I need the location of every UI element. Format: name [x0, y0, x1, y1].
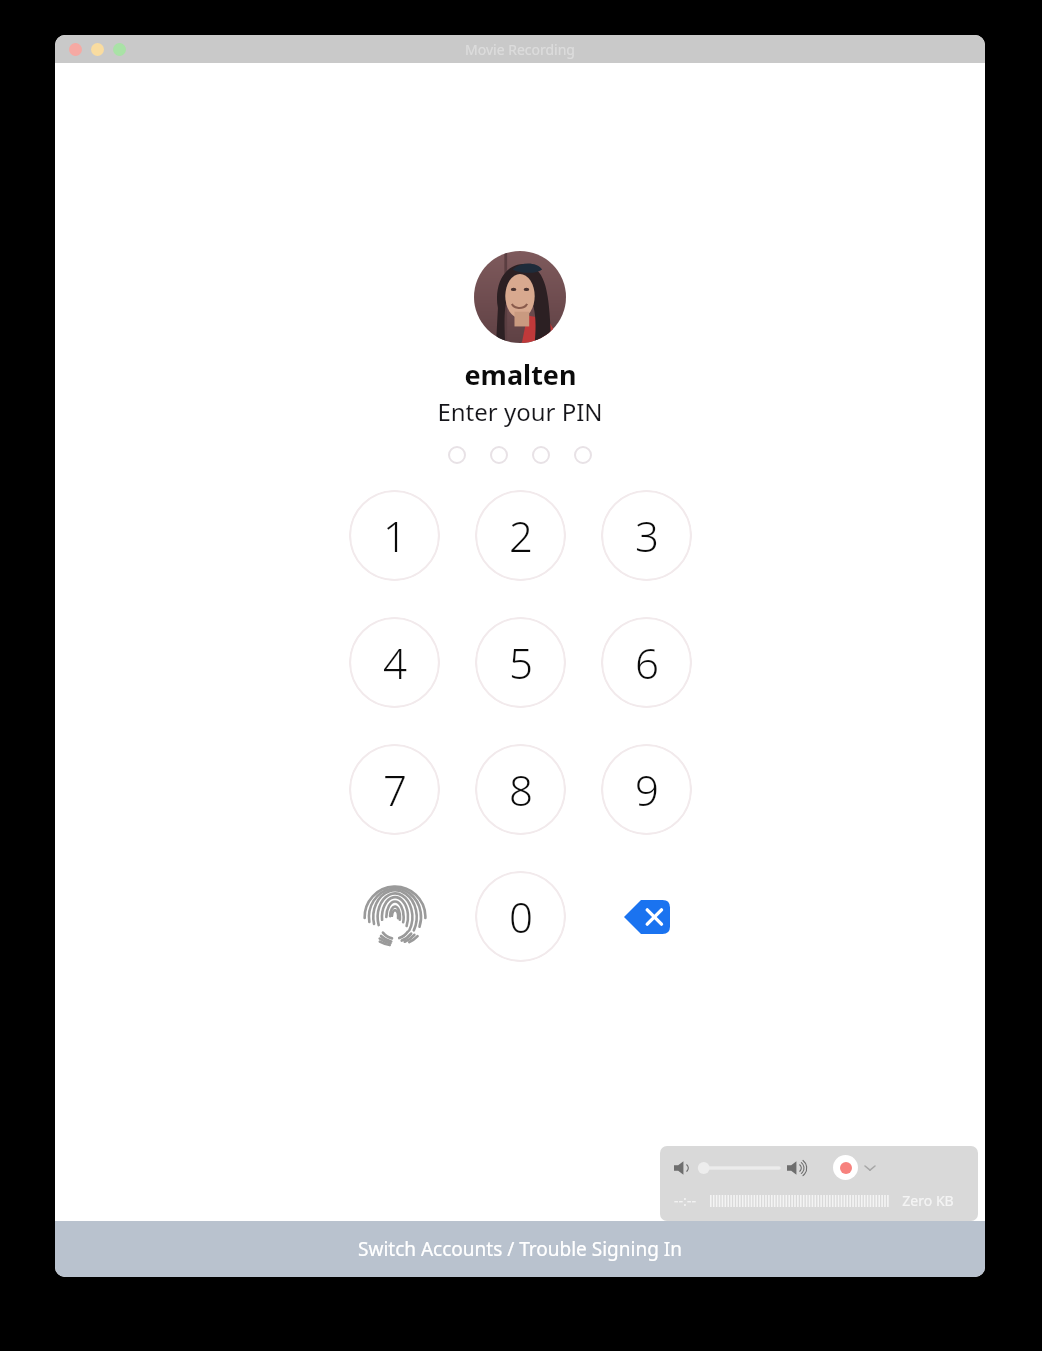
button[interactable]: Zoom — [113, 43, 126, 56]
button[interactable]: 7 — [349, 744, 440, 835]
button[interactable]: 2 — [475, 490, 566, 581]
staticText: 5 — [509, 634, 533, 691]
staticText: 7 — [383, 761, 407, 818]
staticText: 9 — [635, 761, 659, 818]
button[interactable]: User avatar — [474, 251, 566, 343]
button[interactable]: Delete — [601, 871, 692, 962]
button[interactable]: Record — [833, 1155, 858, 1180]
staticText: 6 — [635, 634, 659, 691]
button[interactable]: 9 — [601, 744, 692, 835]
button[interactable]: 0 — [475, 871, 566, 962]
button[interactable]: Close — [69, 43, 82, 56]
staticText: --:-- — [674, 1191, 696, 1210]
staticText: Switch Accounts / Trouble Signing In — [358, 1236, 682, 1262]
button[interactable]: 6 — [601, 617, 692, 708]
staticText: Zero KB — [902, 1191, 954, 1210]
button[interactable]: Recording options — [863, 1161, 877, 1175]
staticText: 0 — [509, 888, 533, 945]
staticText: Movie Recording — [465, 40, 575, 59]
button[interactable]: Switch Accounts / Trouble Signing In — [55, 1221, 985, 1277]
button[interactable]: Minimize — [91, 43, 104, 56]
staticText: 4 — [383, 634, 407, 691]
button[interactable]: Volume — [697, 1160, 781, 1176]
staticText: Enter your PIN — [437, 395, 603, 428]
staticText: 2 — [509, 507, 533, 564]
button[interactable]: 8 — [475, 744, 566, 835]
button[interactable]: 3 — [601, 490, 692, 581]
staticText: emalten — [464, 356, 577, 393]
button[interactable]: 4 — [349, 617, 440, 708]
staticText: 1 — [383, 507, 407, 564]
button[interactable]: Sign in with fingerprint — [349, 871, 440, 962]
button[interactable]: 1 — [349, 490, 440, 581]
staticText: 8 — [509, 761, 533, 818]
staticText: 3 — [635, 507, 659, 564]
button[interactable]: 5 — [475, 617, 566, 708]
